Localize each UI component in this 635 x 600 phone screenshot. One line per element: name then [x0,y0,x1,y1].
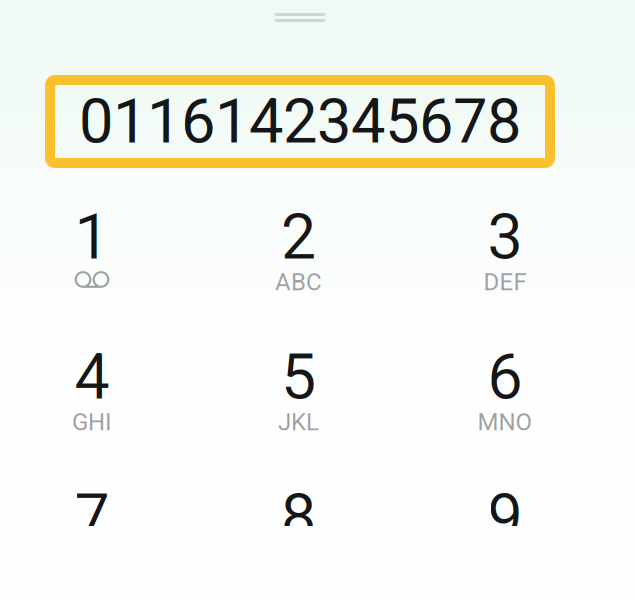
staticText: 8 [281,480,316,554]
button[interactable]: 4 GHI [2,346,182,464]
staticText: DEF [483,268,526,296]
staticText: 3 [487,200,522,274]
staticText: 6 [487,340,522,414]
staticText: 2 [281,200,316,274]
button[interactable]: 6 MNO [415,346,595,464]
staticText: 4 [74,340,109,414]
staticText: 1 [74,200,109,274]
staticText: 9 [487,480,522,554]
button[interactable]: 1 voicemail [2,206,182,324]
staticText: GHI [72,408,112,436]
staticText: 5 [281,340,316,414]
button[interactable]: 8 TUV [208,486,388,600]
button[interactable]: 3 DEF [415,206,595,324]
button[interactable]: 7 PQRS [2,486,182,600]
button[interactable]: 5 JKL [208,346,388,464]
staticText: 7 [74,480,109,554]
staticText: 0116142345678 [79,86,521,157]
staticText: JKL [278,408,319,436]
staticText: MNO [477,408,532,436]
staticText: ABC [275,268,322,296]
button[interactable]: 9 WXYZ [415,486,595,600]
button[interactable]: 2 ABC [208,206,388,324]
button[interactable]: 0116142345678 [45,75,555,168]
